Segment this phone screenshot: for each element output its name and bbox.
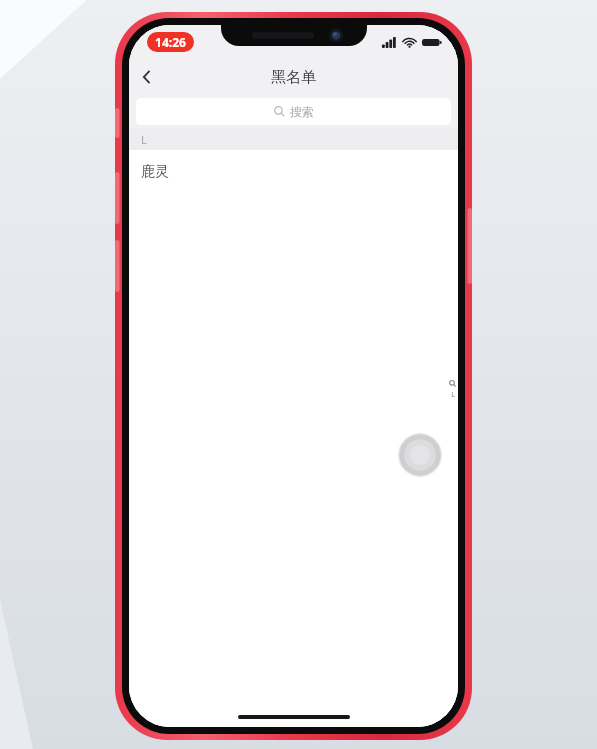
staticText: L	[451, 390, 455, 400]
staticText: 鹿灵	[141, 163, 169, 181]
button[interactable]: 搜索	[136, 98, 451, 125]
staticText: 黑名单	[271, 68, 316, 87]
button[interactable]: Index	[449, 380, 456, 400]
button[interactable]: Back	[129, 59, 165, 95]
staticText: L	[141, 132, 147, 147]
button[interactable]: Assistive touch	[398, 433, 442, 477]
staticText: 14:26	[155, 34, 186, 50]
staticText: 搜索	[290, 104, 314, 119]
button[interactable]: 鹿灵	[129, 150, 458, 194]
